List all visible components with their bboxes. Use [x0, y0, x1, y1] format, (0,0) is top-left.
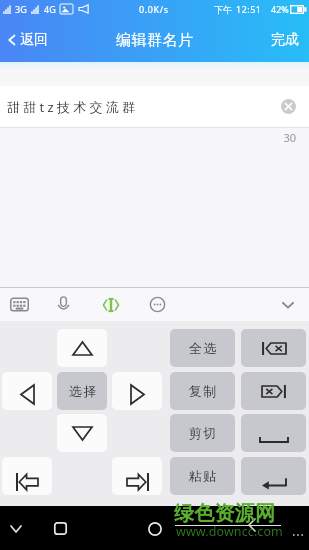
button[interactable]: End	[112, 457, 162, 495]
button[interactable]: Delete	[241, 372, 306, 410]
button[interactable]: Left	[2, 372, 52, 410]
staticText: 完成	[271, 31, 299, 49]
staticText: 下午	[214, 4, 232, 15]
button[interactable]: Clear text	[281, 99, 296, 114]
button[interactable]: 选择	[57, 372, 107, 410]
button[interactable]: Navigate back	[240, 513, 264, 537]
button[interactable]: 剪切	[170, 414, 235, 452]
staticText: 返回	[20, 31, 48, 49]
button[interactable]: 全选	[170, 329, 235, 367]
button[interactable]: More	[288, 525, 308, 545]
button[interactable]: 完成	[271, 18, 299, 62]
button[interactable]: Recent apps	[139, 513, 170, 544]
button[interactable]: Emoji	[134, 288, 180, 321]
button[interactable]: 粘贴	[170, 457, 235, 495]
button[interactable]: Enter	[241, 457, 306, 495]
button[interactable]: Cursor	[88, 288, 134, 321]
button[interactable]: Backspace	[241, 329, 306, 367]
button[interactable]: Keyboard	[0, 288, 38, 321]
staticText: www.downcc.com	[176, 523, 283, 540]
button[interactable]: Home	[45, 513, 76, 544]
staticText: 粘贴	[188, 468, 217, 484]
button[interactable]: Hide keyboard	[267, 288, 309, 321]
button[interactable]: Home	[2, 457, 52, 495]
staticText: 剪切	[188, 425, 217, 441]
staticText: 4G	[44, 3, 56, 15]
button[interactable]: Up	[57, 329, 107, 367]
button[interactable]: 复制	[170, 372, 235, 410]
staticText: 0.0K/s	[139, 3, 169, 15]
staticText: 绿色资源网	[174, 501, 275, 526]
staticText: 复制	[188, 383, 217, 399]
button[interactable]: Voice input	[38, 288, 88, 321]
button[interactable]: 返回	[5, 18, 48, 62]
staticText: 42%	[271, 3, 289, 15]
staticText: 3G	[15, 3, 27, 15]
staticText: 编辑群名片	[116, 31, 194, 50]
staticText: 甜甜tz技术交流群	[7, 98, 139, 116]
button[interactable]: Back	[0, 513, 31, 544]
staticText: 30	[0, 130, 296, 145]
staticText: 选择	[68, 383, 97, 399]
button[interactable]: Right	[112, 372, 162, 410]
button[interactable]: Space	[241, 414, 306, 452]
staticText: 12:51	[236, 3, 262, 15]
staticText: 全选	[188, 340, 217, 356]
button[interactable]: Down	[57, 414, 107, 452]
